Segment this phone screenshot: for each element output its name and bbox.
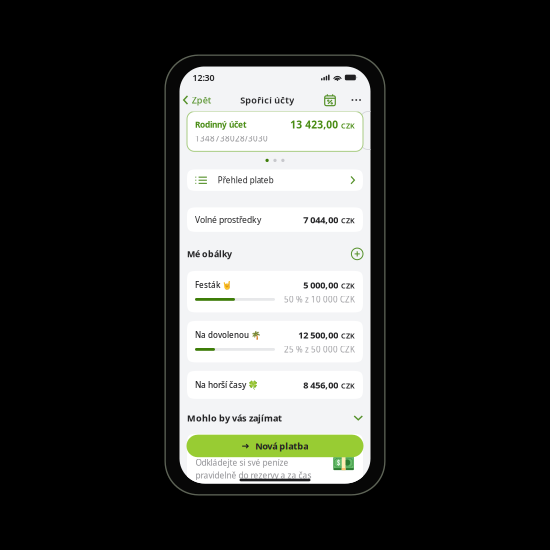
- staticText: CZK: [341, 215, 355, 225]
- staticText: Festák: [195, 279, 220, 290]
- button[interactable]: Rozbalit: [353, 415, 363, 420]
- staticText: 12 500,00: [298, 329, 338, 341]
- staticText: CZK: [341, 381, 355, 390]
- staticText: Volné prostředky: [195, 214, 261, 225]
- staticText: Přehled plateb: [218, 175, 274, 186]
- staticText: 13 423,00: [290, 118, 338, 131]
- staticText: 🤘: [220, 279, 232, 290]
- staticText: Rodinný účet: [195, 119, 247, 130]
- button[interactable]: Nová platba: [186, 435, 363, 457]
- button[interactable]: Festák: [187, 271, 363, 312]
- staticText: 12:30: [192, 71, 214, 83]
- staticText: 50 % z 10 000 CZK: [284, 294, 355, 305]
- button[interactable]: Na horší časy: [187, 371, 363, 399]
- staticText: 1348738028/3030: [195, 133, 268, 144]
- staticText: Na horší časy: [195, 379, 246, 391]
- staticText: Mohlo by vás zajímat: [187, 412, 282, 424]
- staticText: CZK: [341, 121, 355, 130]
- staticText: CZK: [341, 331, 355, 340]
- staticText: 🌴: [249, 329, 261, 340]
- staticText: 7 044,00: [303, 213, 338, 226]
- staticText: Odkládejte si své peníze: [195, 457, 288, 468]
- button[interactable]: Zpět: [181, 89, 213, 111]
- staticText: 8 456,00: [303, 379, 338, 391]
- button[interactable]: Volné prostředky: [187, 207, 363, 232]
- staticText: 25 % z 50 000 CZK: [284, 344, 355, 355]
- staticText: Spořicí účty: [240, 94, 294, 106]
- button[interactable]: Další možnosti: [349, 92, 363, 108]
- button[interactable]: Rodinný účet: [187, 111, 363, 151]
- staticText: Zpět: [192, 94, 211, 106]
- staticText: Spořte pravidelně: [195, 441, 275, 453]
- staticText: pravidelně do rezervy a za čas: [195, 470, 311, 481]
- staticText: 5 000,00: [303, 279, 338, 291]
- staticText: Na dovolenou: [195, 329, 249, 340]
- staticText: Nová platba: [255, 440, 308, 452]
- staticText: 💵: [331, 453, 354, 475]
- staticText: 🍀: [246, 379, 258, 391]
- button[interactable]: Úrokové sazby: [322, 92, 338, 108]
- button[interactable]: Na dovolenou: [187, 321, 363, 362]
- button[interactable]: Přehled plateb: [187, 169, 363, 191]
- staticText: CZK: [341, 281, 355, 290]
- button[interactable]: Přidat obálku: [351, 248, 363, 260]
- staticText: Mé obálky: [187, 248, 232, 260]
